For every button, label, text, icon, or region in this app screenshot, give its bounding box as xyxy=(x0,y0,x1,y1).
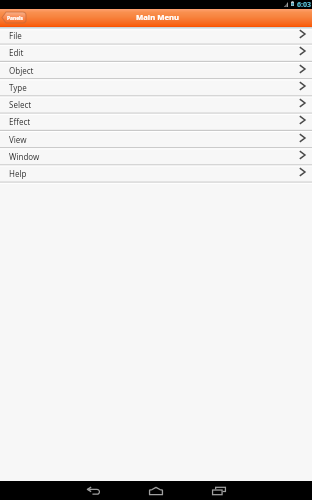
staticText: Main Menu xyxy=(136,12,179,22)
button[interactable]: Edit xyxy=(0,44,312,60)
staticText: Window xyxy=(9,151,40,162)
staticText: 6:03 xyxy=(297,0,312,8)
button[interactable]: View xyxy=(0,131,312,147)
button[interactable]: Window xyxy=(0,148,312,164)
button[interactable]: Type xyxy=(0,79,312,95)
button[interactable]: Panels xyxy=(2,12,26,23)
button[interactable]: Back xyxy=(77,481,109,500)
staticText: Type xyxy=(9,82,27,93)
button[interactable]: Effect xyxy=(0,113,312,129)
button[interactable]: Select xyxy=(0,96,312,112)
button[interactable]: File xyxy=(0,27,312,43)
button[interactable]: Help xyxy=(0,165,312,181)
staticText: Select xyxy=(9,99,32,110)
button[interactable]: Recent apps xyxy=(203,481,235,500)
staticText: Effect xyxy=(9,116,31,127)
staticText: View xyxy=(9,134,27,145)
button[interactable]: Object xyxy=(0,62,312,78)
staticText: File xyxy=(9,30,22,41)
button[interactable]: Home xyxy=(140,481,172,500)
staticText: Help xyxy=(9,168,27,179)
staticText: Edit xyxy=(9,47,24,58)
staticText: Panels xyxy=(7,15,23,22)
staticText: Object xyxy=(9,65,34,76)
